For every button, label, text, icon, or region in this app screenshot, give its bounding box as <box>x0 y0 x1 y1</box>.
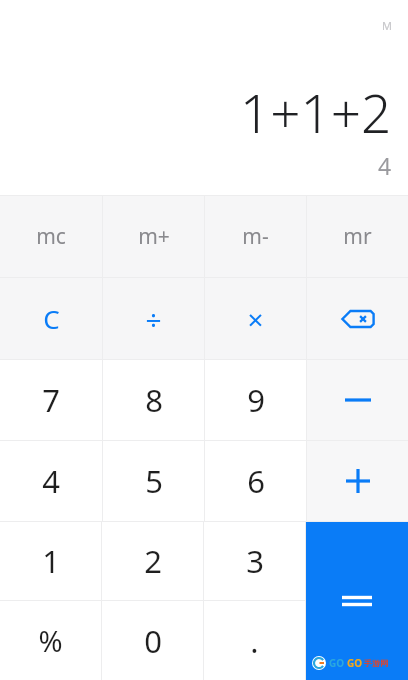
button[interactable]: 8 <box>103 360 204 440</box>
button[interactable]: 0 <box>102 601 203 680</box>
staticText: 5 <box>145 460 163 502</box>
button[interactable]: . <box>204 601 305 680</box>
button[interactable]: 2 <box>102 522 203 600</box>
button[interactable]: Plus <box>307 441 408 521</box>
staticText: 9 <box>247 379 265 421</box>
button[interactable]: × <box>205 278 306 359</box>
staticText: GO <box>347 656 363 670</box>
button[interactable]: m- <box>205 196 306 277</box>
staticText: 1+1+2 <box>240 76 392 148</box>
staticText: mr <box>343 222 372 251</box>
button[interactable]: 3 <box>204 522 305 600</box>
staticText: . <box>250 620 259 662</box>
staticText: 3 <box>246 540 264 582</box>
button[interactable]: Equals <box>306 522 408 680</box>
button[interactable]: Backspace <box>307 278 408 359</box>
staticText: 手游网 <box>364 658 388 668</box>
button[interactable]: mr <box>307 196 408 277</box>
staticText: GO <box>329 656 345 670</box>
staticText: m+ <box>138 222 170 251</box>
staticText: 6 <box>247 460 265 502</box>
staticText: ÷ <box>145 300 162 338</box>
staticText: M <box>382 18 392 33</box>
staticText: mc <box>36 222 66 251</box>
staticText: % <box>38 621 63 660</box>
button[interactable]: Minus <box>307 360 408 440</box>
staticText: 8 <box>145 379 163 421</box>
staticText: 2 <box>144 540 162 582</box>
button[interactable]: 9 <box>205 360 306 440</box>
staticText: 4 <box>378 150 392 181</box>
staticText: 7 <box>42 379 60 421</box>
button[interactable]: 1 <box>0 522 101 600</box>
button[interactable]: 6 <box>205 441 306 521</box>
button[interactable]: C <box>0 278 102 359</box>
staticText: C <box>43 301 60 336</box>
button[interactable]: 5 <box>103 441 204 521</box>
button[interactable]: 7 <box>0 360 102 440</box>
staticText: 4 <box>42 460 60 502</box>
staticText: 0 <box>144 620 162 662</box>
button[interactable]: m+ <box>103 196 204 277</box>
staticText: 1 <box>42 540 60 582</box>
button[interactable]: ÷ <box>103 278 204 359</box>
button[interactable]: % <box>0 601 101 680</box>
button[interactable]: 4 <box>0 441 102 521</box>
staticText: m- <box>242 222 269 251</box>
staticText: × <box>247 300 264 338</box>
button[interactable]: mc <box>0 196 102 277</box>
